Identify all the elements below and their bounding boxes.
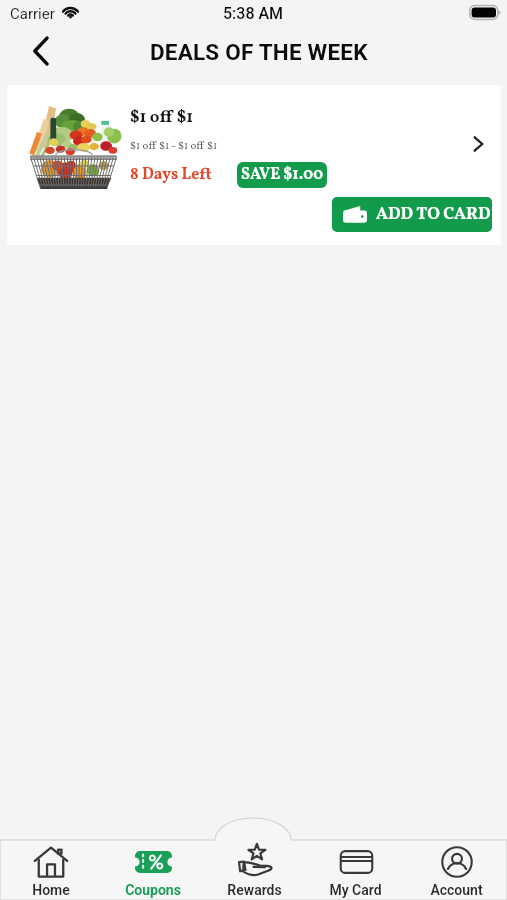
staticText: Rewards [227, 882, 282, 898]
staticText: My Card [329, 882, 382, 898]
button[interactable]: SAVE $1.00 [237, 162, 327, 188]
button[interactable]: View deal details [466, 132, 490, 156]
staticText: SAVE $1.00 [241, 164, 324, 186]
button[interactable]: Coupons [102, 817, 204, 900]
staticText: $1 off $1 [130, 106, 194, 130]
staticText: Home [32, 882, 70, 898]
staticText: Coupons [125, 882, 181, 898]
button[interactable]: Rewards [204, 817, 305, 900]
staticText: DEALS OF THE WEEK [150, 39, 368, 65]
staticText: $1 off $1 - $1 off $1 [130, 139, 218, 154]
button[interactable]: Home [0, 817, 102, 900]
button[interactable]: $1 off $1 [7, 85, 501, 245]
button[interactable]: My Card [305, 817, 406, 900]
staticText: 8 Days Left [130, 164, 212, 186]
button[interactable]: Account [406, 817, 507, 900]
staticText: 5:38 AM [223, 4, 284, 23]
button[interactable]: ADD TO CARD [332, 197, 492, 232]
staticText: ADD TO CARD [376, 203, 491, 227]
button[interactable]: Back [28, 34, 62, 68]
staticText: Account [430, 882, 483, 898]
staticText: Carrier [10, 5, 55, 23]
